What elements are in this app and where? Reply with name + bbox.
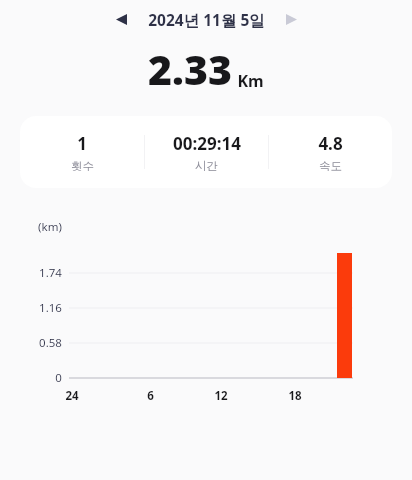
staticText: (km): [38, 219, 62, 235]
staticText: 2024년 11월 5일: [148, 9, 265, 30]
button[interactable]: 1: [20, 126, 144, 179]
button[interactable]: 1: [20, 116, 392, 188]
staticText: 0.58: [39, 335, 62, 351]
staticText: 00:29:14: [173, 132, 241, 155]
staticText: 18: [288, 388, 302, 404]
staticText: 4.8: [318, 132, 343, 155]
button[interactable]: Previous day: [106, 4, 136, 34]
staticText: 2.33: [148, 41, 232, 97]
staticText: Km: [237, 70, 264, 92]
button[interactable]: 2024년 11월 5일: [136, 9, 276, 30]
staticText: 시간: [195, 159, 218, 173]
staticText: 24: [65, 388, 79, 404]
staticText: 1.16: [39, 300, 62, 316]
button[interactable]: Next day: [276, 4, 306, 34]
button[interactable]: 00:29:14: [145, 126, 268, 179]
staticText: 속도: [319, 159, 342, 173]
staticText: 0: [55, 370, 62, 386]
button[interactable]: 4.8: [269, 126, 392, 179]
staticText: 1: [77, 132, 87, 155]
staticText: 6: [147, 388, 154, 404]
staticText: 12: [214, 388, 228, 404]
staticText: 횟수: [71, 159, 94, 173]
staticText: 1.74: [39, 265, 62, 281]
